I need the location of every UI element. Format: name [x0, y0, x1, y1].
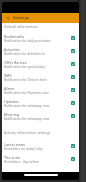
staticText: Notification for special days	[4, 65, 46, 69]
button[interactable]: Activities	[2, 44, 79, 57]
staticText: Notification for Payments due	[4, 91, 49, 95]
staticText: The zone	[4, 155, 21, 160]
button[interactable]: Bookmarks	[2, 31, 79, 44]
staticText: Latest news	[4, 142, 26, 147]
button[interactable]: Back	[2, 13, 13, 23]
staticText: Notification for whatsapp now	[4, 117, 50, 121]
staticText: Reminders - day before	[4, 160, 39, 164]
staticText: Notification for Choices here	[4, 78, 47, 82]
staticText: Activities	[4, 47, 20, 52]
staticText: Default informations	[4, 24, 39, 29]
staticText: Settings	[13, 15, 29, 21]
staticText: Bookmarks	[4, 34, 25, 39]
button[interactable]: Alarm	[2, 83, 79, 96]
button[interactable]: Updates	[2, 96, 79, 109]
staticText: Notification for whatsapp now	[4, 104, 50, 108]
button[interactable]: Morning	[2, 109, 79, 122]
staticText: Updates	[4, 99, 19, 104]
staticText: Reminders on today's day	[4, 147, 43, 151]
staticText: Offer Arrives	[4, 60, 27, 65]
button[interactable]: Latest news	[2, 139, 79, 152]
staticText: Notification for Activities 3x	[4, 52, 46, 56]
button[interactable]: SMS	[2, 70, 79, 83]
button[interactable]: The zone	[2, 152, 79, 165]
staticText: Activity information settings	[4, 130, 51, 135]
staticText: Alarm	[4, 86, 15, 91]
button[interactable]: Offer Arrives	[2, 57, 79, 70]
staticText: Notification for daily purchases	[4, 39, 51, 43]
staticText: Morning	[4, 112, 20, 117]
staticText: SMS	[4, 73, 12, 78]
